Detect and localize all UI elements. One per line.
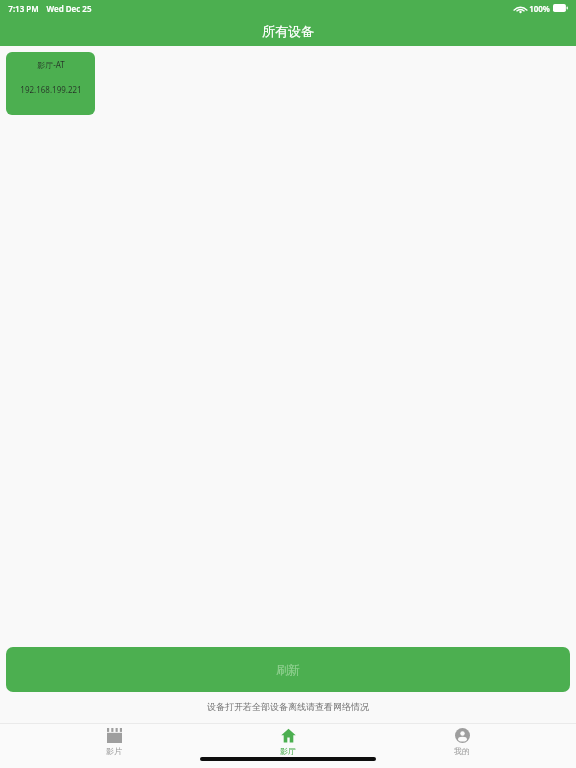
button[interactable]: 我的	[402, 728, 522, 756]
staticText: 刷新	[276, 662, 300, 677]
other: 影厅	[281, 728, 296, 743]
staticText: 影片	[106, 746, 122, 756]
other: 我的	[455, 728, 470, 743]
staticText: 100%	[529, 3, 550, 14]
staticText: 影厅	[280, 746, 296, 756]
button[interactable]: 影片	[54, 728, 174, 756]
staticText: 192.168.199.221	[20, 84, 82, 95]
button[interactable]: 影厅-AT	[6, 52, 95, 115]
staticText: 7:13 PM	[8, 3, 39, 14]
staticText: 影厅-AT	[37, 59, 65, 70]
button[interactable]: 刷新	[6, 647, 570, 692]
staticText: 设备打开若全部设备离线请查看网络情况	[207, 701, 369, 712]
button[interactable]: 影厅	[228, 728, 348, 756]
staticText: 我的	[454, 746, 470, 756]
other: 影片	[107, 728, 122, 743]
staticText: 所有设备	[262, 23, 314, 39]
staticText: Wed Dec 25	[46, 3, 92, 14]
